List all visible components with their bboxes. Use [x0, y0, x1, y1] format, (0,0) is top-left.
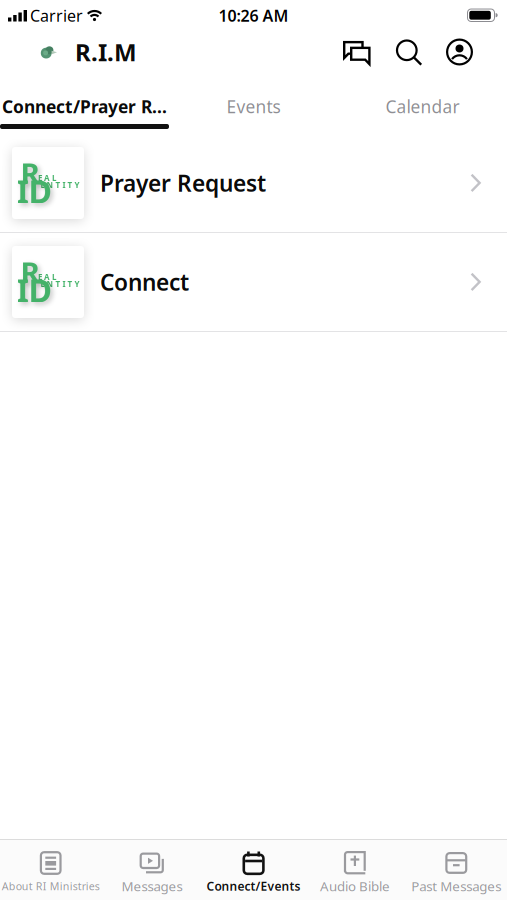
staticText: R: [20, 153, 39, 192]
staticText: R: [20, 252, 39, 291]
staticText: Connect/Prayer R...: [2, 95, 167, 118]
staticText: About RI Ministries: [2, 879, 100, 893]
button[interactable]: Calendar: [338, 89, 507, 129]
button[interactable]: About RI Ministries: [0, 851, 101, 892]
staticText: Audio Bible: [320, 877, 390, 895]
button[interactable]: Account: [446, 38, 473, 65]
button[interactable]: Messages: [101, 851, 203, 892]
staticText: Past Messages: [411, 877, 501, 895]
button[interactable]: Audio Bible: [304, 851, 406, 892]
button[interactable]: Past Messages: [406, 851, 507, 892]
button[interactable]: Connect/Events: [203, 851, 304, 892]
button[interactable]: Events: [169, 89, 338, 129]
button[interactable]: Connect/Prayer R...: [0, 89, 169, 129]
staticText: ID: [16, 170, 51, 212]
staticText: Carrier: [30, 5, 83, 26]
button[interactable]: E A L: [0, 134, 507, 232]
staticText: E A L: [38, 173, 56, 183]
staticText: Messages: [122, 877, 183, 895]
staticText: E N T I T Y: [40, 279, 79, 289]
staticText: Events: [226, 95, 280, 118]
staticText: Prayer Request: [100, 168, 266, 198]
staticText: Connect: [100, 267, 189, 297]
button[interactable]: Search: [395, 38, 422, 65]
staticText: E N T I T Y: [40, 180, 79, 190]
button[interactable]: E A L: [0, 233, 507, 331]
staticText: 10:26 AM: [218, 5, 288, 26]
staticText: Connect/Events: [206, 878, 300, 894]
staticText: R.I.M: [75, 36, 137, 68]
staticText: E A L: [38, 272, 56, 282]
staticText: Calendar: [385, 95, 459, 118]
button[interactable]: Messages: [343, 38, 371, 65]
staticText: ID: [16, 269, 51, 311]
